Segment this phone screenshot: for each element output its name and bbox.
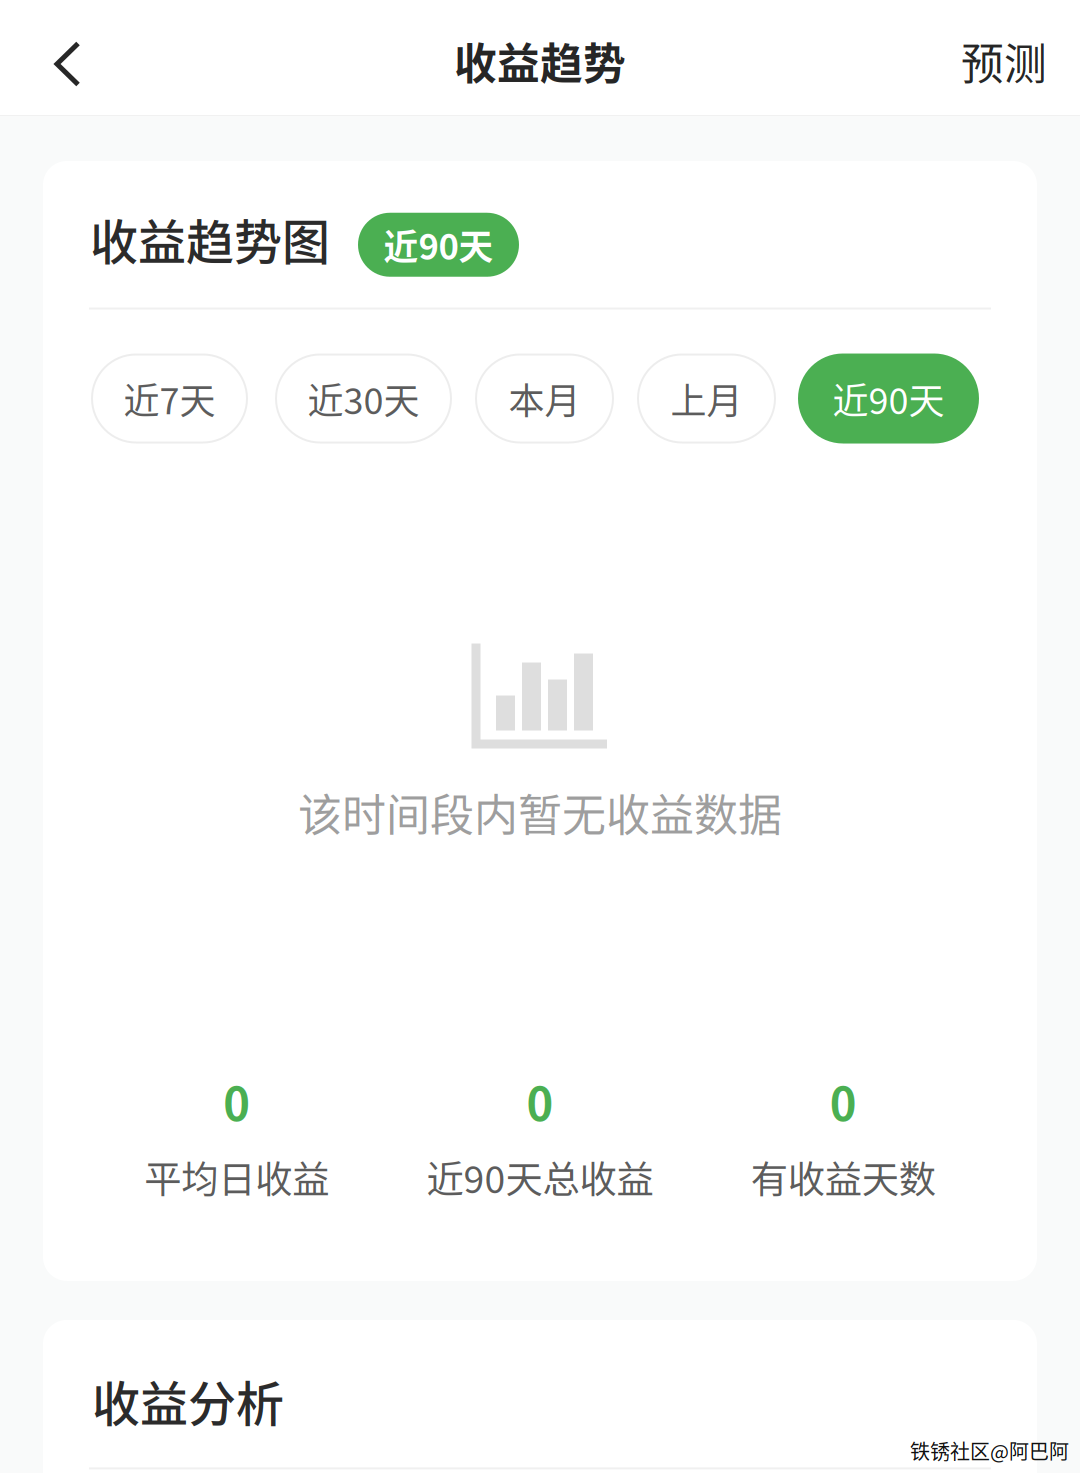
staticText: 近90天	[383, 220, 493, 270]
staticText: 铁锈社区@阿巴阿	[910, 1436, 1069, 1465]
staticText: 平均日收益	[144, 1150, 329, 1204]
button[interactable]: 近7天	[92, 354, 247, 442]
staticText: 本月	[508, 372, 580, 424]
staticText: 收益趋势图	[90, 204, 330, 273]
staticText: 近90天	[832, 372, 944, 424]
staticText: 该时间段内暂无收益数据	[298, 780, 782, 844]
staticText: 近90天总收益	[426, 1150, 653, 1204]
button[interactable]: 近30天	[276, 354, 451, 442]
staticText: 0	[830, 1068, 857, 1134]
button[interactable]: 返回	[0, 7, 131, 115]
staticText: 0	[223, 1068, 250, 1134]
button[interactable]: 上月	[638, 354, 775, 442]
staticText: 预测	[961, 30, 1047, 92]
staticText: 收益分析	[92, 1366, 284, 1435]
button[interactable]: 近90天	[799, 354, 978, 442]
button[interactable]: 本月	[476, 354, 613, 442]
staticText: 上月	[670, 372, 742, 424]
staticText: 收益趋势	[454, 30, 626, 92]
staticText: 有收益天数	[751, 1150, 936, 1204]
staticText: 0	[526, 1068, 553, 1134]
staticText: 近30天	[307, 372, 419, 424]
button[interactable]: 预测	[961, 7, 1080, 115]
staticText: 近7天	[123, 372, 215, 424]
